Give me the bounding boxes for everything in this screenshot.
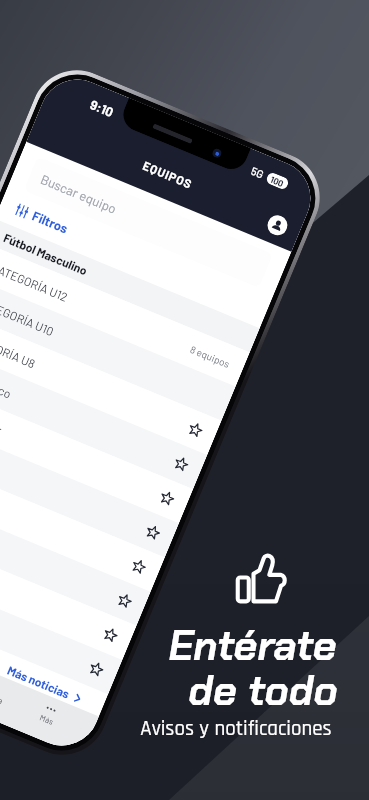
staticText: Deportivo Sur (0, 396, 5, 437)
button[interactable]: Agenda (0, 677, 8, 706)
button[interactable]: Perfil (264, 212, 290, 238)
button[interactable]: CATEGORÍA U12 (0, 243, 250, 387)
button[interactable]: CATEGORÍA U8 (0, 311, 221, 455)
staticText: Club Atlético (0, 362, 14, 401)
staticText: Fútbol Masculino (2, 230, 90, 278)
staticText: Más noticias (5, 663, 72, 701)
staticText: 9:10 (88, 96, 116, 120)
staticText: CATEGORÍA U8 (0, 328, 38, 370)
staticText: Más (38, 712, 55, 727)
staticText: CATEGORÍA U10 (0, 294, 56, 338)
button[interactable]: Racing Club (0, 482, 151, 626)
button[interactable]: Deportivo Sur (0, 379, 193, 523)
button[interactable]: Buscar equipo (23, 156, 273, 288)
button[interactable]: Fútbol Masculino (0, 218, 260, 352)
staticText: CATEGORÍA U12 (0, 260, 70, 304)
button[interactable]: CATEGORÍA U10 (0, 277, 235, 421)
button[interactable]: Más (37, 702, 60, 727)
button[interactable]: Villa Nueva (0, 550, 122, 694)
button[interactable]: Atlético Norte (0, 448, 165, 592)
staticText: 5G (249, 164, 266, 181)
button[interactable]: Club Atlético (0, 345, 207, 489)
staticText: Entérate (168, 619, 337, 672)
button[interactable]: Real Unión (0, 413, 179, 557)
staticText: EQUIPOS (141, 158, 195, 191)
staticText: Avisos y notificaciones (140, 715, 332, 742)
staticText: de todo (188, 664, 338, 717)
button[interactable]: Filtros (13, 201, 71, 237)
button[interactable]: San Martín (0, 516, 136, 660)
staticText: Agenda (0, 687, 4, 706)
staticText: 8 equipos (188, 343, 232, 370)
staticText: Filtros (30, 207, 71, 237)
button[interactable]: Más noticias (0, 592, 85, 706)
staticText: Buscar equipo (38, 171, 119, 217)
staticText: 100 (269, 174, 286, 189)
